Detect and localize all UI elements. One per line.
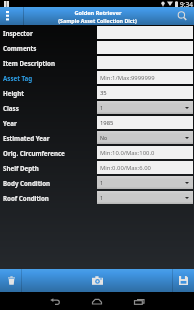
button[interactable]: Year <box>0 115 194 130</box>
staticText: Golden Retriever <box>74 9 122 17</box>
staticText: Year <box>3 119 17 127</box>
staticText: Orig. Circumference <box>3 149 65 157</box>
staticText: Roof Condition <box>3 194 49 202</box>
button[interactable]: Shelf Depth <box>0 160 194 175</box>
staticText: 1 <box>100 179 103 186</box>
button[interactable]: Class <box>0 100 194 115</box>
staticText: 1985 <box>100 119 114 127</box>
staticText: Estimated Year <box>3 134 50 142</box>
staticText: 1 <box>100 104 103 111</box>
button[interactable]: Camera <box>84 269 110 292</box>
staticText: Asset Tag <box>3 74 33 82</box>
button[interactable]: Inspector <box>0 25 194 40</box>
staticText: Item Description <box>3 59 55 67</box>
staticText: 1 <box>100 194 103 201</box>
button[interactable]: Recents <box>130 292 148 310</box>
button[interactable]: Home <box>88 292 106 310</box>
staticText: Min:10.0/Max:100.0 <box>100 149 155 157</box>
button[interactable]: Search <box>170 7 194 25</box>
button[interactable]: Comments <box>0 40 194 55</box>
button[interactable]: Item Description <box>0 55 194 70</box>
staticText: No <box>100 134 108 141</box>
button[interactable]: Menu <box>0 7 24 25</box>
button[interactable]: Height <box>0 85 194 100</box>
button[interactable]: Back <box>46 292 64 310</box>
staticText: Inspector <box>3 29 33 37</box>
staticText: Height <box>3 89 24 97</box>
staticText: 35 <box>100 89 107 97</box>
staticText: Comments <box>3 44 37 52</box>
button[interactable]: Body Condition <box>0 175 194 190</box>
button[interactable]: Orig. Circumference <box>0 145 194 160</box>
staticText: (Sample Asset Collection Dict) <box>58 17 137 24</box>
staticText: Min:0.00/Max:6.00 <box>100 164 151 172</box>
button[interactable]: Save <box>172 269 194 292</box>
staticText: Body Condition <box>3 179 51 187</box>
staticText: Shelf Depth <box>3 164 39 172</box>
button[interactable]: Estimated Year <box>0 130 194 145</box>
button[interactable]: Roof Condition <box>0 190 194 205</box>
staticText: 9:34 <box>180 0 193 7</box>
button[interactable]: Delete <box>0 269 22 292</box>
staticText: Class <box>3 104 19 112</box>
staticText: Min:1/Max:9999999 <box>100 74 155 82</box>
button[interactable]: Asset Tag <box>0 70 194 85</box>
